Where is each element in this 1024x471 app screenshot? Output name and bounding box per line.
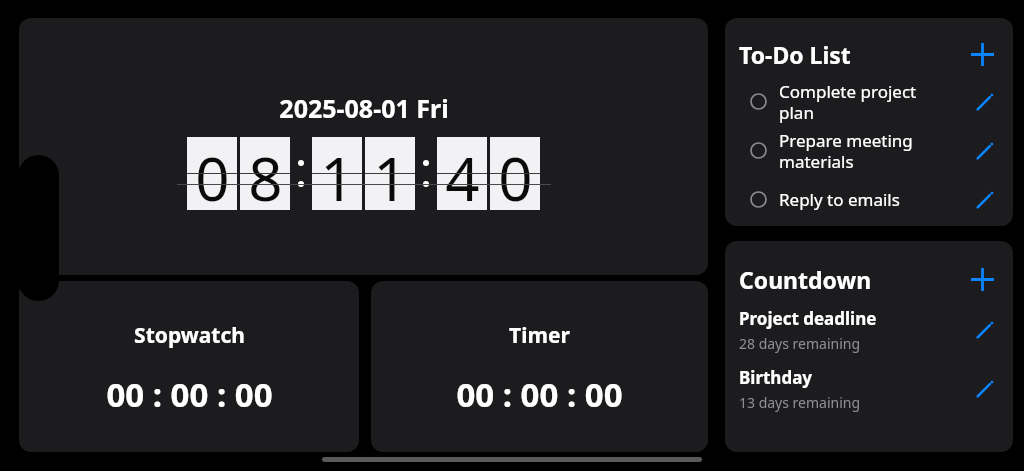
button[interactable]: Complete project plan xyxy=(739,77,999,126)
button[interactable]: Timer xyxy=(371,281,708,452)
button[interactable]: Add to-do item xyxy=(965,37,999,71)
staticText: To-Do List xyxy=(739,39,851,70)
staticText: Prepare meeting materials xyxy=(779,129,913,173)
staticText: Timer xyxy=(509,321,570,350)
staticText: 00 : 00 : 00 xyxy=(456,372,623,417)
staticText: 0 xyxy=(498,137,533,210)
staticText: Stopwatch xyxy=(134,321,245,350)
staticText: Reply to emails xyxy=(779,188,900,211)
button[interactable]: 2025-08-01 Fri xyxy=(19,18,708,275)
staticText: 13 days remaining xyxy=(739,393,861,412)
staticText: 1 xyxy=(320,137,355,210)
button[interactable]: Edit Project deadline xyxy=(969,315,999,345)
staticText: 1 xyxy=(373,137,408,210)
staticText: Birthday xyxy=(739,366,813,389)
staticText: 8 xyxy=(248,137,283,210)
staticText: 00 : 00 : 00 xyxy=(106,372,273,417)
button[interactable]: Reply to emails xyxy=(739,175,999,224)
button[interactable]: Stopwatch xyxy=(19,281,359,452)
staticText: 28 days remaining xyxy=(739,334,861,353)
staticText: 0 xyxy=(195,137,230,210)
button[interactable]: Edit Birthday xyxy=(969,374,999,404)
staticText: Countdown xyxy=(739,264,872,295)
staticText: Project deadline xyxy=(739,307,877,330)
button[interactable]: Edit Complete project plan xyxy=(969,87,999,117)
button[interactable]: Project deadline xyxy=(739,307,999,353)
button[interactable]: Birthday xyxy=(739,366,999,412)
staticText: 4 xyxy=(445,137,480,210)
button[interactable]: Edit Reply to emails xyxy=(969,185,999,215)
button[interactable]: Prepare meeting materials xyxy=(739,126,999,175)
staticText: 2025-08-01 Fri xyxy=(279,91,449,125)
button[interactable]: Add countdown xyxy=(965,262,999,296)
button[interactable]: Edit Prepare meeting materials xyxy=(969,136,999,166)
staticText: Complete project plan xyxy=(779,80,917,124)
